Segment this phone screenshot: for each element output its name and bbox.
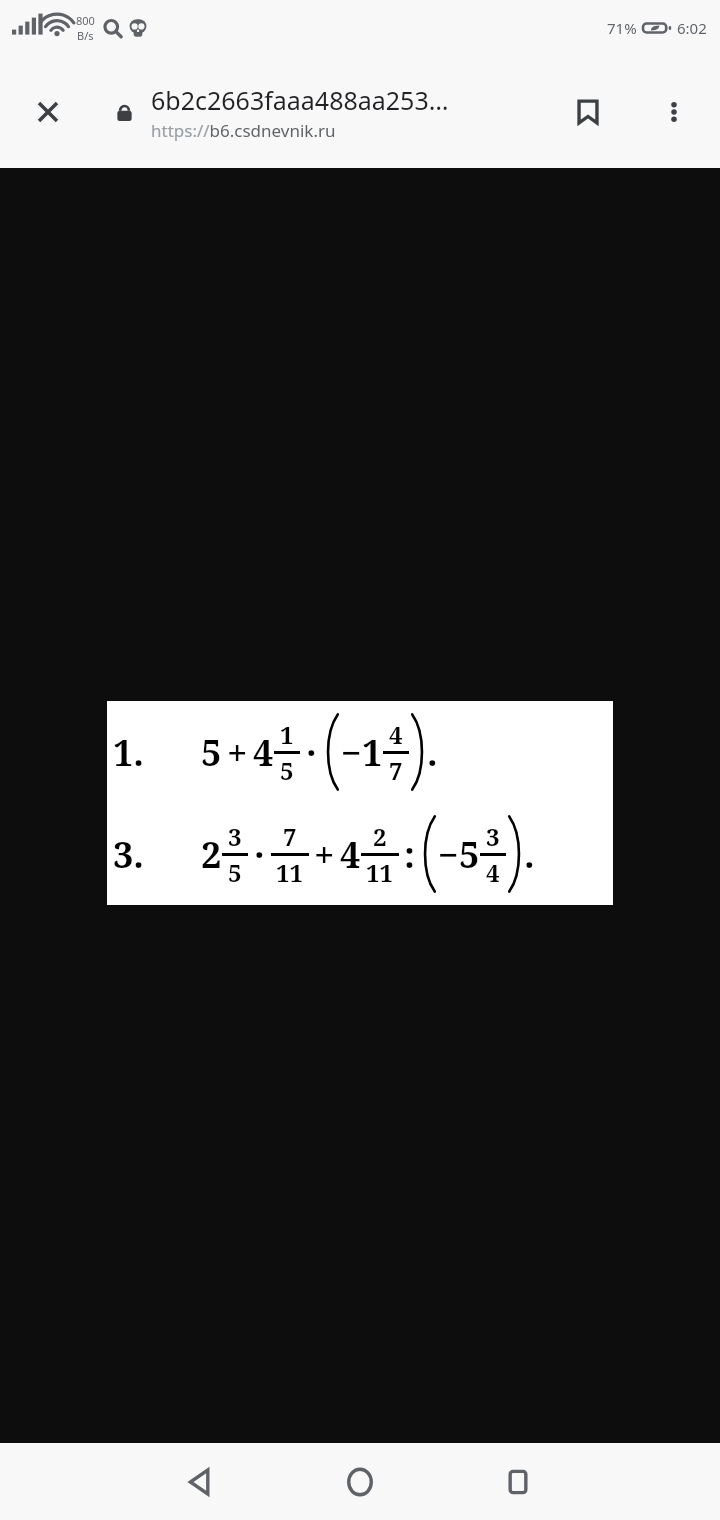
staticText: 3	[228, 820, 242, 853]
staticText: −	[341, 728, 362, 777]
staticText: .	[524, 830, 535, 879]
staticText: 5	[459, 830, 480, 879]
staticText: 6b2c2663faaa488aa253…	[151, 83, 449, 117]
staticText: 5	[228, 856, 242, 889]
button[interactable]: Recent apps	[482, 1446, 554, 1518]
button[interactable]: More options	[648, 86, 700, 138]
staticText: 4	[253, 728, 274, 777]
staticText: 7	[389, 754, 403, 787]
staticText: 11	[366, 856, 394, 889]
staticText: +	[227, 728, 248, 777]
button[interactable]: Back	[164, 1446, 236, 1518]
staticText: 7	[283, 820, 297, 853]
staticText: 4	[340, 830, 361, 879]
button[interactable]: Home	[324, 1446, 396, 1518]
staticText: 800	[76, 13, 95, 28]
staticText: 1	[362, 728, 383, 777]
staticText: B/s	[77, 28, 94, 43]
staticText: −	[438, 830, 459, 879]
staticText: 2	[201, 830, 222, 879]
staticText: https://b6.csdnevnik.ru	[151, 119, 336, 142]
staticText: ·	[306, 728, 317, 777]
staticText: 11	[276, 856, 304, 889]
button[interactable]: 6b2c2663faaa488aa253…	[151, 83, 531, 142]
staticText: 2	[373, 820, 387, 853]
staticText: .	[427, 728, 438, 777]
staticText: 71%	[607, 18, 637, 38]
staticText: ·	[254, 830, 265, 879]
staticText: :	[404, 830, 415, 879]
staticText: 1.	[113, 728, 144, 777]
button[interactable]: 1.	[107, 701, 613, 905]
button[interactable]: Close	[20, 84, 76, 140]
staticText: 3.	[113, 830, 144, 879]
staticText: 5	[280, 754, 294, 787]
staticText: 6:02	[677, 18, 707, 38]
staticText: 1	[280, 718, 294, 751]
staticText: 5	[201, 728, 222, 777]
staticText: 3	[486, 820, 500, 853]
staticText: +	[314, 830, 335, 879]
staticText: 4	[486, 856, 500, 889]
staticText: 4	[389, 718, 403, 751]
button[interactable]: Bookmark	[560, 84, 616, 140]
